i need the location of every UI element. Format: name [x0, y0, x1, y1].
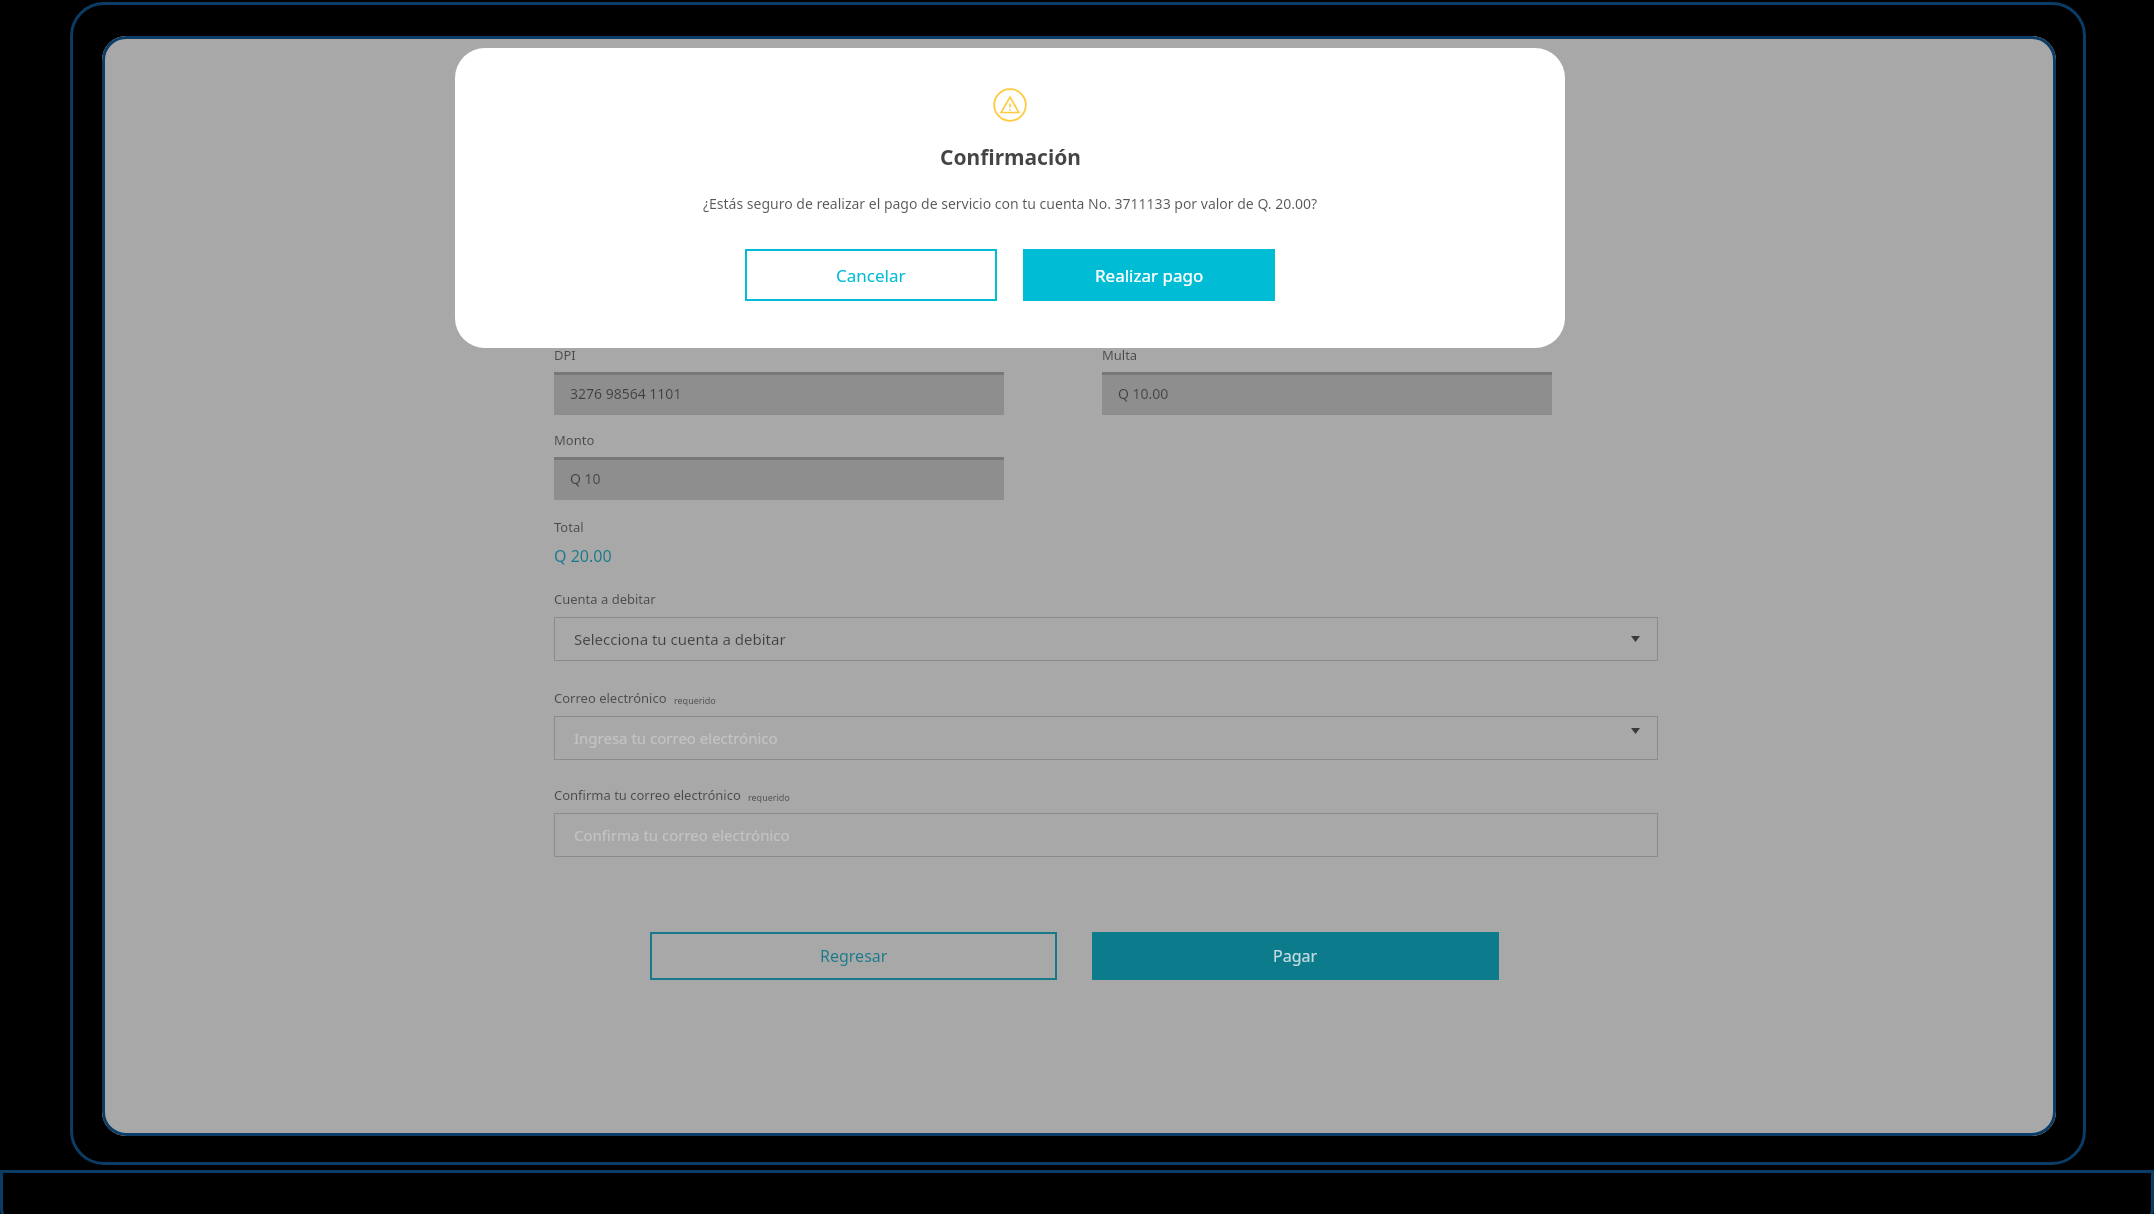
button[interactable]: Cancelar	[745, 249, 997, 301]
staticText: Realizar pago	[1095, 264, 1204, 287]
button[interactable]: Realizar pago	[1023, 249, 1275, 301]
staticText: Regresar	[820, 945, 888, 967]
button[interactable]: 3276 98564 1101	[554, 372, 1004, 415]
button[interactable]: Regresar	[650, 932, 1057, 980]
staticText: Q 10	[570, 469, 601, 488]
staticText: Total	[554, 518, 584, 536]
staticText: Confirma tu correo electrónico	[554, 786, 741, 804]
button[interactable]: Q 10.00	[1102, 372, 1552, 415]
staticText: Q 10.00	[1118, 384, 1169, 403]
button[interactable]: Pagar	[1092, 932, 1499, 980]
staticText: DPI	[554, 346, 576, 364]
staticText: Confirma tu correo electrónico	[574, 825, 790, 845]
staticText: Cancelar	[836, 264, 906, 287]
button[interactable]: Confirma tu correo electrónico	[554, 813, 1658, 857]
button[interactable]: Q 10	[554, 457, 1004, 500]
staticText: Ingresa tu correo electrónico	[574, 728, 778, 748]
staticText: Selecciona tu cuenta a debitar	[574, 629, 786, 649]
staticText: 3276 98564 1101	[570, 384, 682, 403]
staticText: Pagar	[1273, 945, 1318, 967]
staticText: requerido	[748, 791, 790, 803]
staticText: ¿Estás seguro de realizar el pago de ser…	[455, 194, 1565, 213]
staticText: Cuenta a debitar	[554, 590, 656, 608]
staticText: Multa	[1102, 346, 1138, 364]
button[interactable]: Ingresa tu correo electrónico	[554, 716, 1658, 760]
staticText: Correo electrónico	[554, 689, 667, 707]
staticText: Q 20.00	[554, 545, 612, 567]
staticText: Monto	[554, 431, 595, 449]
button[interactable]: Selecciona tu cuenta a debitar	[554, 617, 1658, 661]
staticText: Confirmación	[940, 143, 1081, 172]
staticText: requerido	[674, 694, 716, 706]
